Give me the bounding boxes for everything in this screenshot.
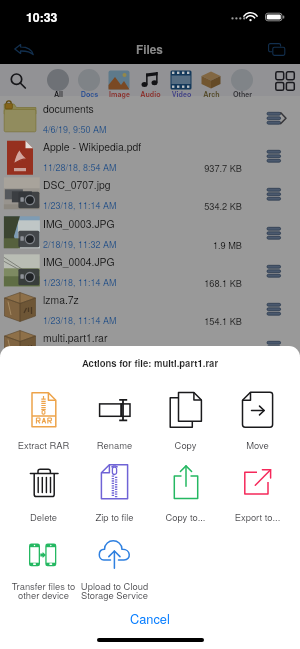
staticText: Move <box>222 438 293 451</box>
button[interactable]: Cancel <box>0 604 300 632</box>
staticText: 4/6/19, 9:50 AM <box>43 123 107 136</box>
button[interactable]: Rename <box>79 388 150 443</box>
staticText: Extract RAR <box>8 438 79 451</box>
button[interactable]: Other <box>227 66 258 96</box>
staticText: 1/23/18, 11:14 AM <box>43 314 117 327</box>
staticText: documents <box>43 101 94 116</box>
staticText: Storage Service <box>79 588 150 601</box>
button[interactable]: IMG_0003.JPG <box>0 211 300 249</box>
staticText: Docs <box>74 89 105 99</box>
staticText: DSC_0707.jpg <box>43 177 111 192</box>
button[interactable]: Extract RAR <box>8 388 79 443</box>
staticText: Files <box>136 41 163 58</box>
staticText: 11/28/18, 8:54 AM <box>43 161 117 174</box>
button[interactable]: Arch <box>196 66 227 96</box>
staticText: Copy <box>150 438 221 451</box>
button[interactable]: documents <box>0 96 300 134</box>
staticText: Image <box>104 89 135 99</box>
button[interactable]: Audio <box>135 66 166 96</box>
button[interactable]: Tabs <box>262 36 292 62</box>
button[interactable]: Video <box>166 66 197 96</box>
staticText: lzma.7z <box>43 292 79 307</box>
staticText: IMG_0003.JPG <box>43 216 115 231</box>
staticText: Transfer files to <box>8 579 79 592</box>
button[interactable]: multi.part1.rar <box>0 325 300 363</box>
button[interactable]: Transfer files to <box>8 533 79 588</box>
button[interactable]: All <box>43 66 74 96</box>
staticText: Copy to... <box>150 510 221 523</box>
staticText: 168.1 KB <box>150 276 242 289</box>
staticText: Export to... <box>222 510 293 523</box>
staticText: Arch <box>196 89 227 99</box>
button[interactable]: Apple - Wikipedia.pdf <box>0 134 300 172</box>
staticText: Actions for file: multi.part1.rar <box>0 356 300 370</box>
staticText: Other <box>227 89 258 99</box>
button[interactable]: Copy to... <box>150 461 221 516</box>
staticText: 2/18/19, 11:32 AM <box>43 238 117 251</box>
staticText: All <box>43 89 74 99</box>
staticText: 1/23/18, 11:14 AM <box>43 276 117 289</box>
button[interactable]: Delete <box>8 461 79 516</box>
staticText: IMG_0004.JPG <box>43 254 115 269</box>
staticText: 1.9 MB <box>150 238 242 251</box>
staticText: Video <box>166 89 197 99</box>
staticText: other device <box>8 588 79 601</box>
staticText: Rename <box>79 438 150 451</box>
button[interactable]: Docs <box>74 66 105 96</box>
button[interactable]: Image <box>104 66 135 96</box>
button[interactable]: DSC_0707.jpg <box>0 172 300 210</box>
button[interactable]: IMG_0004.JPG <box>0 249 300 287</box>
staticText: multi.part1.rar <box>43 330 108 345</box>
button[interactable]: Move <box>222 388 293 443</box>
button[interactable]: Back <box>9 36 39 62</box>
staticText: 154.1 KB <box>150 314 242 327</box>
staticText: 10:33 <box>26 8 58 26</box>
button[interactable]: Upload to Cloud <box>79 533 150 588</box>
button[interactable]: Export to... <box>222 461 293 516</box>
button[interactable]: Search <box>4 68 32 94</box>
staticText: 937.7 KB <box>150 161 242 174</box>
staticText: Delete <box>8 510 79 523</box>
staticText: Apple - Wikipedia.pdf <box>43 139 142 154</box>
button[interactable]: Copy <box>150 388 221 443</box>
staticText: Cancel <box>130 609 170 627</box>
staticText: Audio <box>135 89 166 99</box>
staticText: 534.2 KB <box>150 199 242 212</box>
button[interactable]: Grid view <box>270 66 299 95</box>
staticText: 1/23/18, 11:14 AM <box>43 199 117 212</box>
staticText: 1/23/18, 11:14 AM <box>43 352 117 365</box>
button[interactable]: lzma.7z <box>0 287 300 325</box>
staticText: Upload to Cloud <box>79 579 150 592</box>
staticText: Zip to file <box>79 510 150 523</box>
button[interactable]: Zip to file <box>79 461 150 516</box>
